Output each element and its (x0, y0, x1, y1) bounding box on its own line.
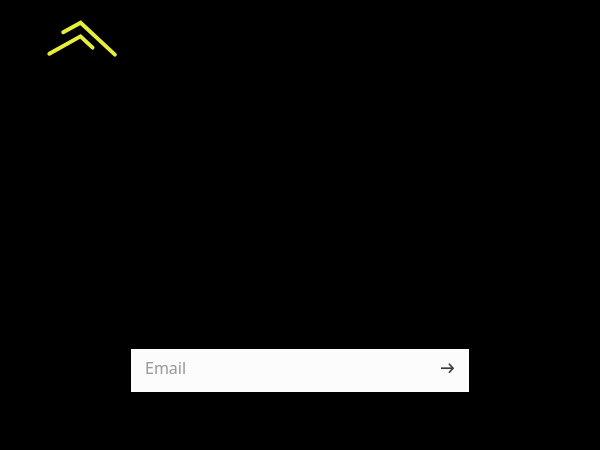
button[interactable]: Submit email (421, 349, 469, 392)
other: Brand logo (40, 12, 124, 62)
staticText: Email (145, 357, 187, 379)
button[interactable]: Email input field (131, 349, 469, 392)
